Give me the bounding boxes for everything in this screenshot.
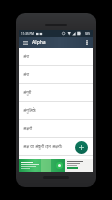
- staticText: 58%: [85, 32, 91, 36]
- button[interactable]: Advertisement: [19, 159, 93, 172]
- button[interactable]: अंगुरी: [19, 84, 93, 102]
- button[interactable]: अंश: [19, 48, 93, 66]
- button[interactable]: अंश: [19, 66, 93, 84]
- staticText: 11:35 PM: [21, 32, 34, 36]
- button[interactable]: Open navigation drawer: [22, 39, 29, 46]
- button[interactable]: अंगुलिके: [19, 102, 93, 120]
- staticText: अंश: [23, 72, 30, 78]
- staticText: अंगुरी: [23, 90, 32, 96]
- staticText: अंश: [23, 54, 30, 60]
- button[interactable]: अक्ष या अंकुरी (इन अक्षरों): [19, 138, 93, 156]
- button[interactable]: Add word: [75, 141, 88, 154]
- staticText: अक्ष या अंकुरी (इन अक्षरों): [23, 144, 63, 150]
- staticText: अंगुलिके: [23, 108, 36, 114]
- button[interactable]: More options: [83, 39, 90, 46]
- staticText: Alpha: [32, 39, 46, 46]
- staticText: अक्षरों: [23, 126, 32, 132]
- button[interactable]: अक्षरों: [19, 120, 93, 138]
